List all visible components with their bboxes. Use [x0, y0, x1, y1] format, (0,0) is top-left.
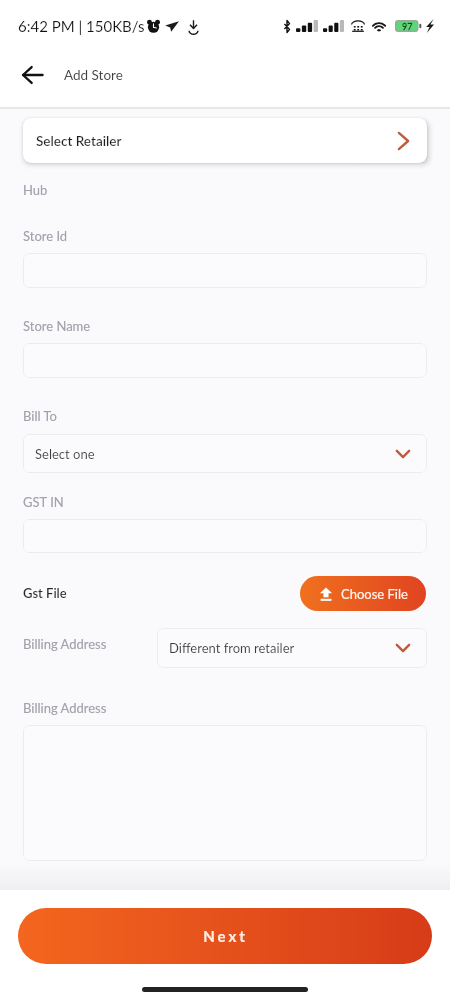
staticText: Choose File [341, 586, 408, 602]
button[interactable]: Different from retailer [157, 628, 427, 668]
staticText: Different from retailer [169, 640, 295, 656]
staticText: 97 [402, 21, 413, 32]
button[interactable] [23, 343, 427, 378]
staticText: Billing Address [23, 636, 107, 652]
staticText: Add Store [64, 67, 123, 83]
button[interactable]: Choose File [300, 576, 426, 611]
staticText: Next [203, 927, 248, 945]
staticText: Select Retailer [36, 133, 122, 149]
staticText: Bill To [23, 408, 57, 424]
button[interactable]: Next [18, 908, 432, 964]
staticText: Select one [35, 446, 95, 462]
staticText: Store Name [23, 318, 91, 334]
button[interactable]: Select one [23, 434, 427, 473]
button[interactable] [23, 519, 427, 553]
staticText: GST IN [23, 494, 64, 510]
staticText: Billing Address [23, 700, 107, 716]
staticText: 6:42 PM | 150KB/s [18, 17, 145, 35]
staticText: Store Id [23, 228, 68, 244]
button[interactable]: Back [14, 57, 50, 93]
button[interactable] [23, 253, 427, 288]
staticText: Gst File [23, 585, 67, 601]
staticText: Hub [23, 182, 48, 198]
button[interactable]: Select Retailer [23, 118, 427, 163]
